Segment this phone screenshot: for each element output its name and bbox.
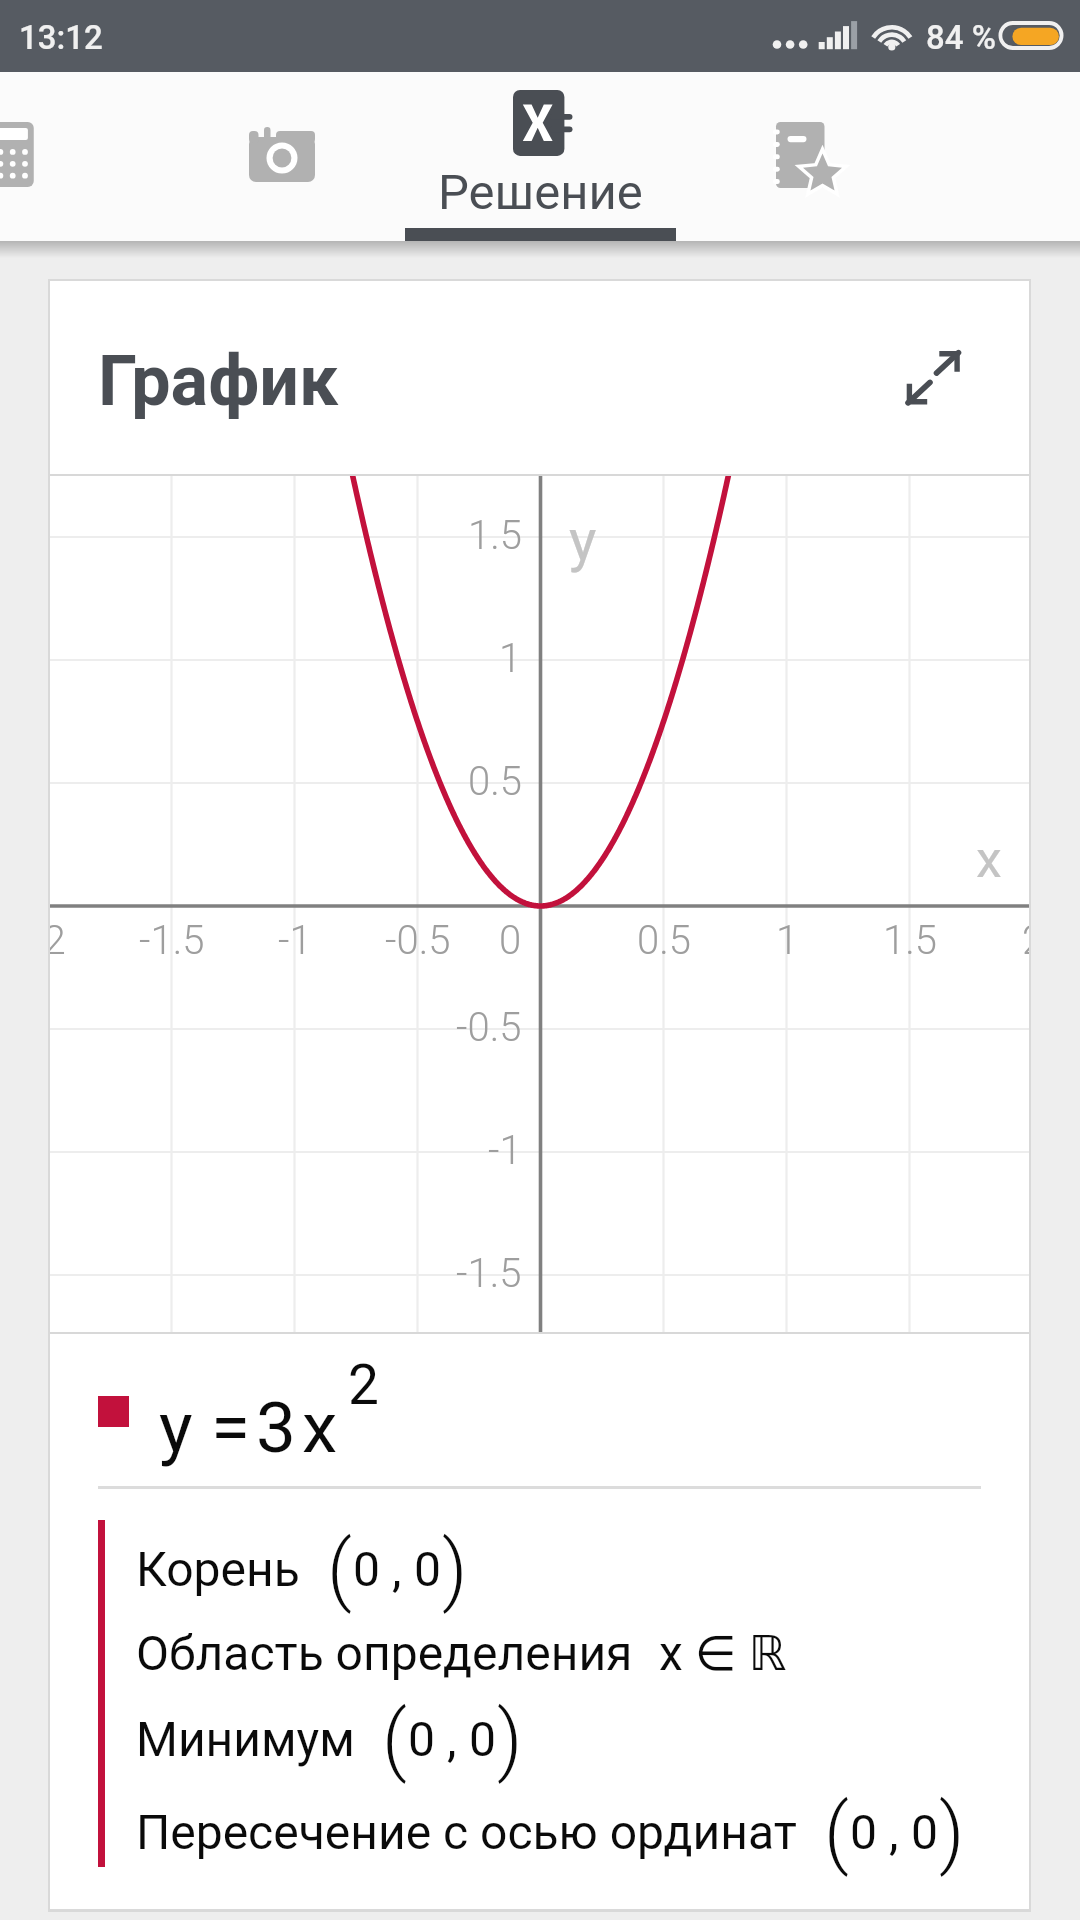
staticText: 0 — [414, 1541, 441, 1597]
staticText: x ∈ ℝ — [659, 1625, 787, 1681]
staticText: 0 — [353, 1541, 380, 1597]
staticText: 1.5 — [883, 917, 937, 964]
staticText: ) — [497, 1694, 523, 1785]
staticText: 0 — [469, 1711, 496, 1767]
staticText: y — [569, 506, 597, 574]
staticText: 3 — [256, 1386, 296, 1469]
staticText: x — [976, 829, 1002, 890]
staticText: Решение — [438, 164, 643, 221]
button[interactable]: Калькулятор — [0, 122, 34, 187]
staticText: x — [302, 1386, 338, 1469]
staticText: -1 — [488, 1127, 522, 1174]
staticText: 13:12 — [19, 18, 103, 57]
button[interactable]: Развернуть — [889, 333, 979, 423]
staticText: , — [435, 1711, 469, 1767]
button[interactable]: Заметки — [776, 122, 843, 188]
staticText: Пересечение с осью ординат — [136, 1804, 797, 1860]
staticText: ) — [442, 1524, 468, 1615]
staticText: 1.5 — [468, 512, 522, 559]
button[interactable]: Решение — [405, 72, 676, 241]
staticText: График — [98, 340, 339, 422]
staticText: -2 — [50, 917, 66, 964]
staticText: 0 — [408, 1711, 435, 1767]
staticText: ) — [939, 1787, 965, 1878]
staticText: , — [380, 1541, 414, 1597]
staticText: 2 — [348, 1353, 379, 1417]
staticText: -1.5 — [139, 917, 205, 964]
staticText: y — [159, 1386, 193, 1469]
staticText: , — [877, 1804, 911, 1860]
staticText: -1 — [278, 917, 312, 964]
staticText: Корень — [136, 1541, 300, 1597]
staticText: 84 % — [926, 18, 996, 57]
staticText: ( — [382, 1694, 407, 1785]
staticText: = — [211, 1386, 250, 1469]
staticText: 0.5 — [637, 917, 691, 964]
staticText: 0 — [911, 1804, 938, 1860]
staticText: 2 — [1022, 917, 1029, 964]
staticText: -0.5 — [385, 917, 451, 964]
staticText: 0 — [850, 1804, 877, 1860]
staticText: 0.5 — [468, 758, 522, 805]
staticText: 1 — [776, 917, 799, 964]
staticText: 1 — [499, 635, 522, 682]
staticText: -1.5 — [456, 1250, 522, 1297]
staticText: Минимум — [136, 1711, 355, 1767]
staticText: ( — [824, 1787, 849, 1878]
button[interactable]: Камера — [249, 127, 315, 182]
staticText: 0 — [499, 917, 522, 964]
staticText: Область определения — [136, 1625, 633, 1681]
staticText: -0.5 — [456, 1004, 522, 1051]
staticText: ( — [327, 1524, 352, 1615]
